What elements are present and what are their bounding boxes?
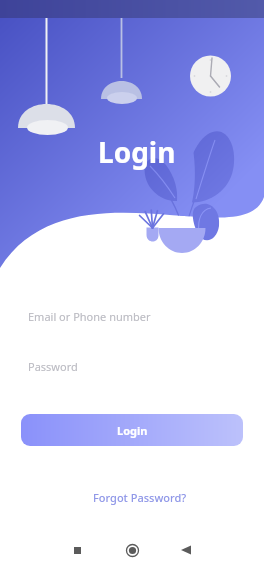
button[interactable]: Forgot Password?	[93, 490, 187, 505]
staticText: Login	[98, 133, 176, 171]
button[interactable]: Email or Phone number	[20, 291, 243, 341]
staticText: Email or Phone number	[28, 309, 151, 324]
button[interactable]: Login	[21, 414, 243, 446]
staticText: Login	[117, 423, 148, 438]
button[interactable]: Recent apps	[66, 539, 88, 561]
staticText: Password	[28, 359, 78, 374]
staticText: Forgot Password?	[93, 490, 187, 505]
button[interactable]: Home	[121, 539, 143, 561]
button[interactable]: Password	[20, 341, 243, 391]
button[interactable]: Back	[175, 539, 197, 561]
